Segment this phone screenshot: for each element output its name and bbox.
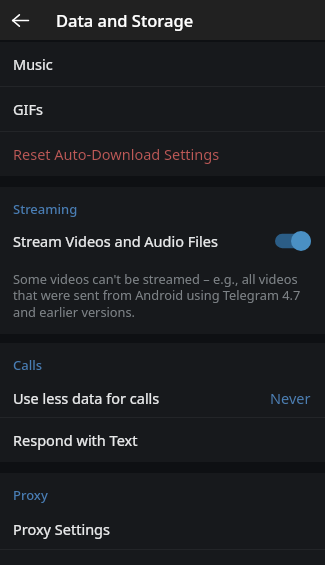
staticText: GIFs: [13, 99, 43, 119]
staticText: Use less data for calls: [13, 388, 160, 408]
button[interactable]: Reset Auto-Download Settings: [0, 132, 325, 176]
staticText: Music: [13, 54, 53, 74]
button[interactable]: Proxy Settings: [0, 509, 325, 550]
staticText: Calls: [13, 356, 43, 374]
staticText: Data and Storage: [56, 9, 194, 31]
button[interactable]: Music: [0, 42, 325, 87]
button[interactable]: Use less data for calls: [0, 379, 325, 418]
staticText: Proxy Settings: [13, 519, 110, 539]
button[interactable]: Back: [0, 0, 40, 40]
staticText: Reset Auto-Download Settings: [13, 144, 220, 164]
button[interactable]: Stream Videos and Audio Files: [0, 223, 325, 259]
staticText: Some videos can't be streamed – e.g., al…: [13, 270, 309, 321]
staticText: Never: [270, 388, 311, 408]
button[interactable]: Stream Videos and Audio Files toggle: [275, 231, 311, 251]
staticText: Streaming: [13, 200, 78, 218]
staticText: Respond with Text: [13, 430, 138, 450]
staticText: Proxy: [13, 486, 48, 504]
button[interactable]: GIFs: [0, 87, 325, 132]
staticText: Stream Videos and Audio Files: [13, 231, 218, 251]
button[interactable]: Respond with Text: [0, 418, 325, 462]
